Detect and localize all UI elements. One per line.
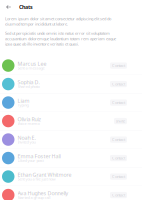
staticText: Contact xyxy=(112,192,125,198)
staticText: Sent a message xyxy=(17,65,44,71)
button[interactable]: Liam xyxy=(0,94,142,112)
staticText: Contact xyxy=(112,81,125,87)
staticText: Contact xyxy=(112,137,125,142)
staticText: Contact xyxy=(112,63,125,68)
staticText: Sed ut perspiciatis unde omnis iste natu… xyxy=(5,31,116,46)
staticText: Invite xyxy=(116,118,125,124)
staticText: Chats xyxy=(19,3,33,11)
staticText: Contact xyxy=(112,100,125,105)
button[interactable]: Emma Foster Hall xyxy=(0,149,142,168)
button[interactable]: Ava Hughes Donnelly xyxy=(0,186,142,200)
staticText: Started a group call xyxy=(17,195,50,200)
staticText: Liked your post xyxy=(17,158,43,163)
button[interactable]: Ethan Grant Whitmore xyxy=(0,168,142,186)
staticText: Contact xyxy=(112,155,125,161)
staticText: Shared photo xyxy=(17,84,39,89)
staticText: Contact xyxy=(112,174,125,179)
staticText: Sophia D. xyxy=(17,78,39,86)
staticText: Voice memo xyxy=(17,121,39,126)
staticText: Liam xyxy=(17,97,29,104)
staticText: Emma Foster Hall xyxy=(17,152,60,160)
staticText: Typing xyxy=(17,102,28,108)
button[interactable]: Sophia D. xyxy=(0,75,142,94)
staticText: Olivia Ruiz xyxy=(17,115,41,123)
button[interactable]: Noah E. xyxy=(0,131,142,149)
staticText: Invited you xyxy=(17,139,35,145)
staticText: Noah E. xyxy=(17,134,35,141)
staticText: Sent you a file just now xyxy=(17,176,55,182)
staticText: Lorem ipsum dolor sit amet consectetur a… xyxy=(5,16,111,27)
staticText: Ethan Grant Whitmore xyxy=(17,171,71,178)
button[interactable]: Back xyxy=(3,1,14,13)
staticText: Ava Hughes Donnelly xyxy=(17,189,68,197)
button[interactable]: Marcus Lee xyxy=(0,57,142,75)
button[interactable]: Olivia Ruiz xyxy=(0,112,142,131)
staticText: Marcus Lee xyxy=(17,60,46,67)
